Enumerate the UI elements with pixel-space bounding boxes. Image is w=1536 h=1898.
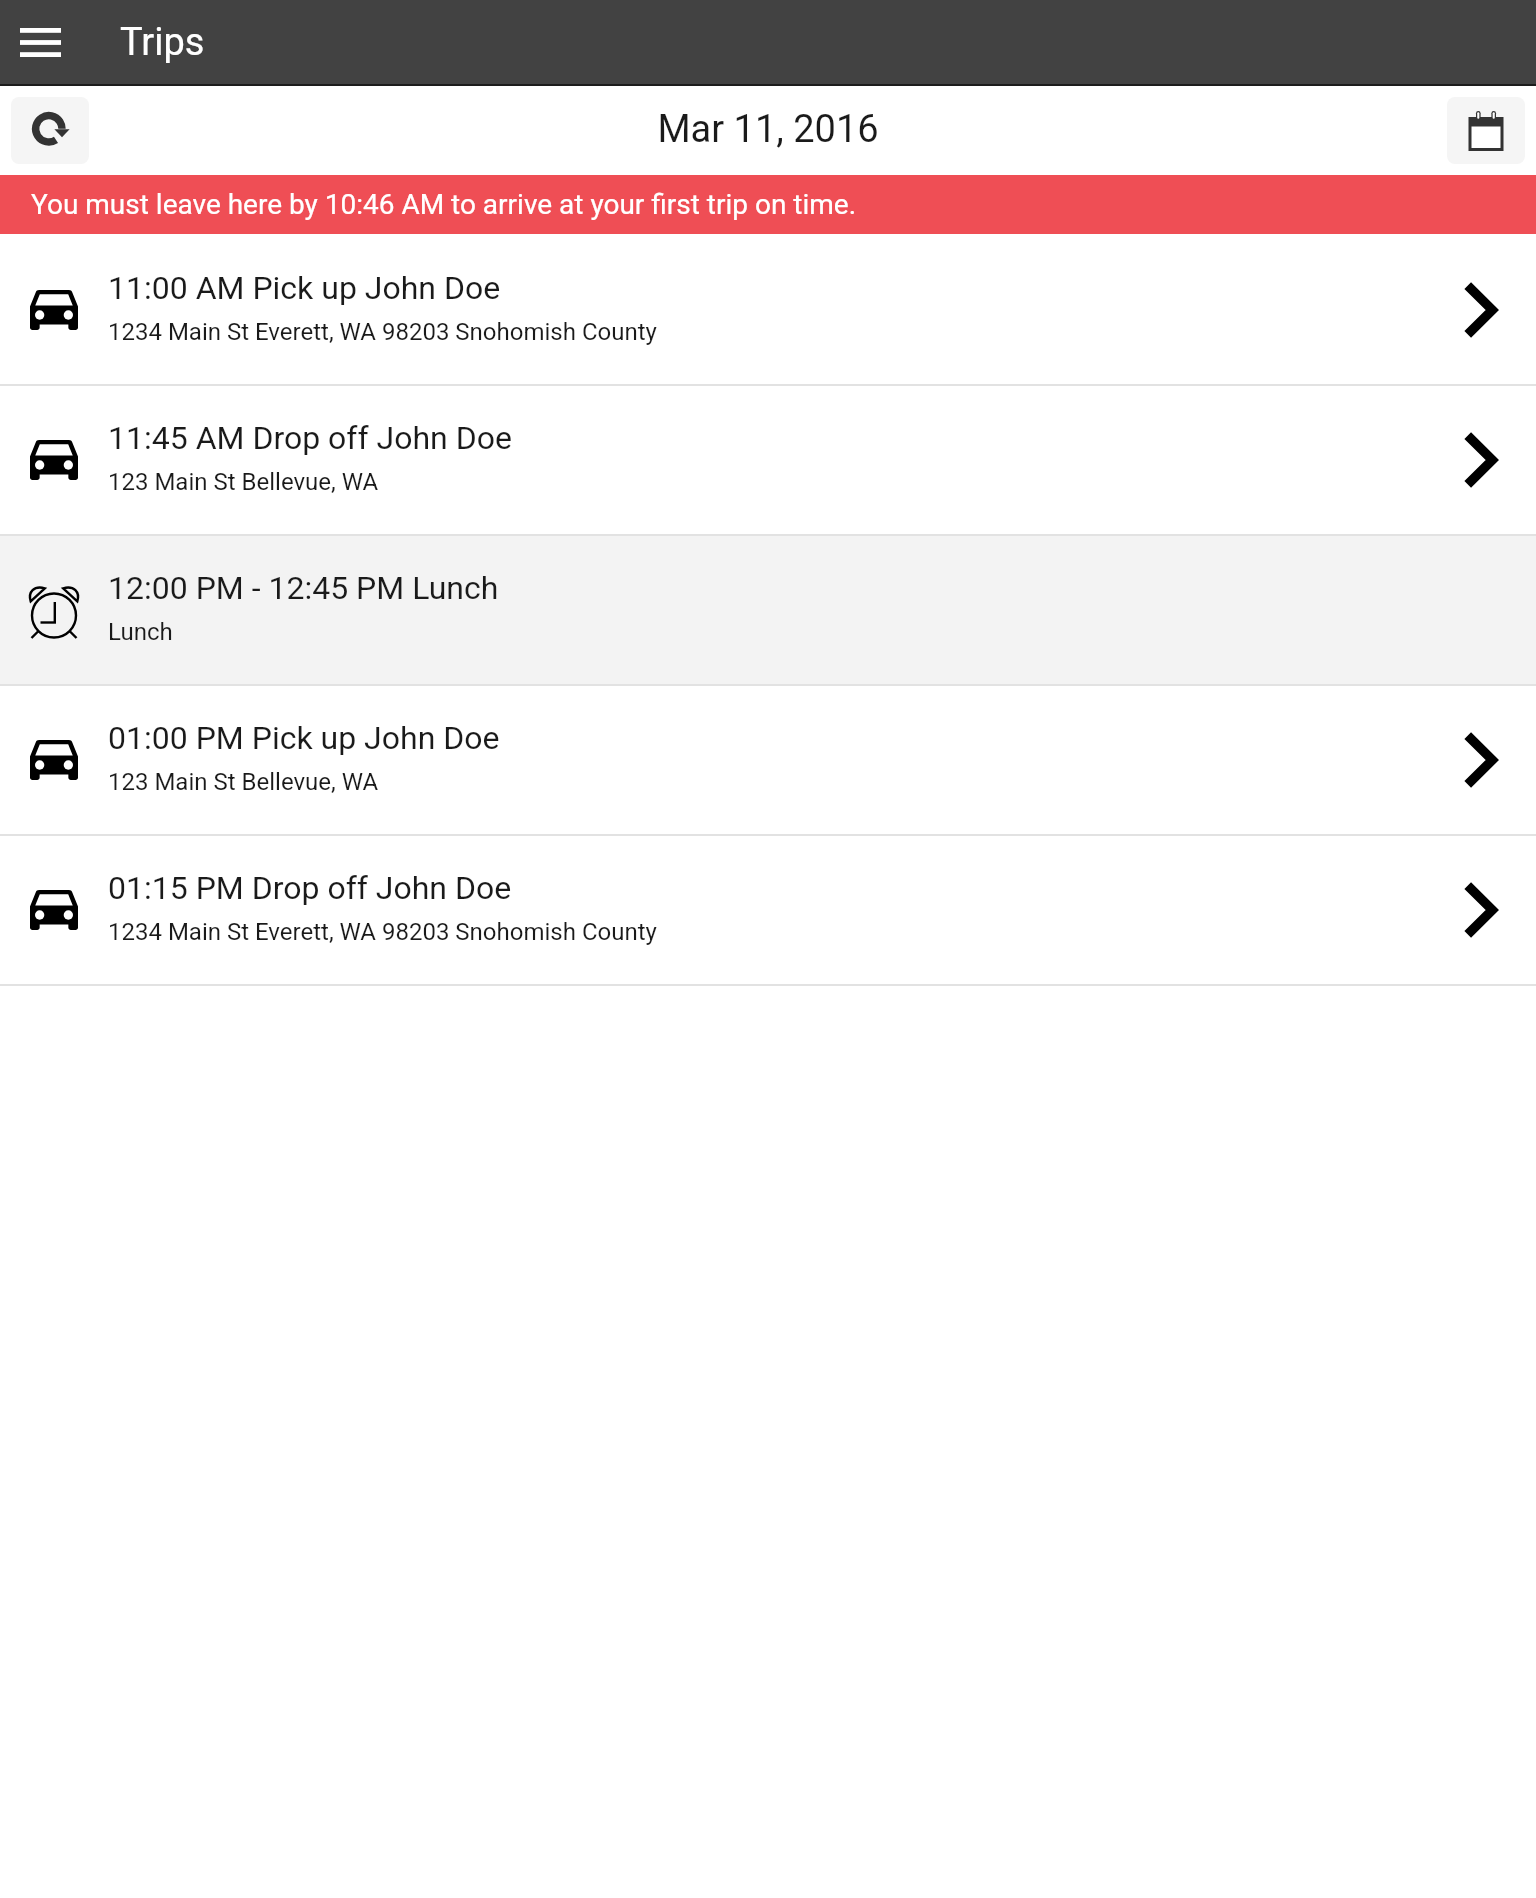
button[interactable]: Choose date [1447, 97, 1525, 164]
staticText: 11:00 AM Pick up John Doe [108, 269, 501, 307]
button[interactable]: Refresh [11, 97, 89, 164]
staticText: 123 Main St Bellevue, WA [108, 468, 379, 496]
staticText: 123 Main St Bellevue, WA [108, 768, 379, 796]
button[interactable]: 01:00 PM Pick up John Doe [0, 686, 1536, 834]
staticText: 01:00 PM Pick up John Doe [108, 719, 500, 757]
staticText: Lunch [108, 618, 173, 646]
staticText: 12:00 PM - 12:45 PM Lunch [108, 569, 499, 607]
staticText: You must leave here by 10:46 AM to arriv… [31, 188, 857, 221]
staticText: 11:45 AM Drop off John Doe [108, 419, 512, 457]
staticText: Trips [120, 20, 205, 65]
button[interactable]: 11:00 AM Pick up John Doe [0, 236, 1536, 384]
staticText: Mar 11, 2016 [657, 107, 879, 152]
staticText: 01:15 PM Drop off John Doe [108, 869, 512, 907]
staticText: 1234 Main St Everett, WA 98203 Snohomish… [108, 918, 657, 946]
button[interactable]: Open navigation menu [2, 0, 78, 84]
button[interactable]: 11:45 AM Drop off John Doe [0, 386, 1536, 534]
staticText: 1234 Main St Everett, WA 98203 Snohomish… [108, 318, 657, 346]
button[interactable]: 01:15 PM Drop off John Doe [0, 836, 1536, 984]
button[interactable]: 12:00 PM - 12:45 PM Lunch [0, 536, 1536, 684]
